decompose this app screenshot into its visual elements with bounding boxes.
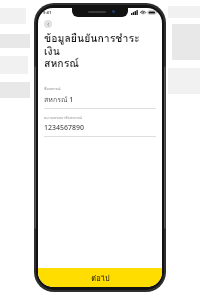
staticText: 1234567890 [44,123,85,133]
button[interactable]: ต่อไป [38,268,162,287]
button[interactable]: Back [44,20,52,28]
staticText: ข้อมูลยืนยันการชำระเงิน สหกรณ์ [44,30,154,72]
staticText: ต่อไป [91,272,110,284]
staticText: หมายเลขสมาชิกสหกรณ์ [44,115,82,121]
staticText: 9:41 [43,10,52,16]
staticText: สหกรณ์ 1 [44,94,74,105]
staticText: ชื่อสหกรณ์ [44,86,61,92]
